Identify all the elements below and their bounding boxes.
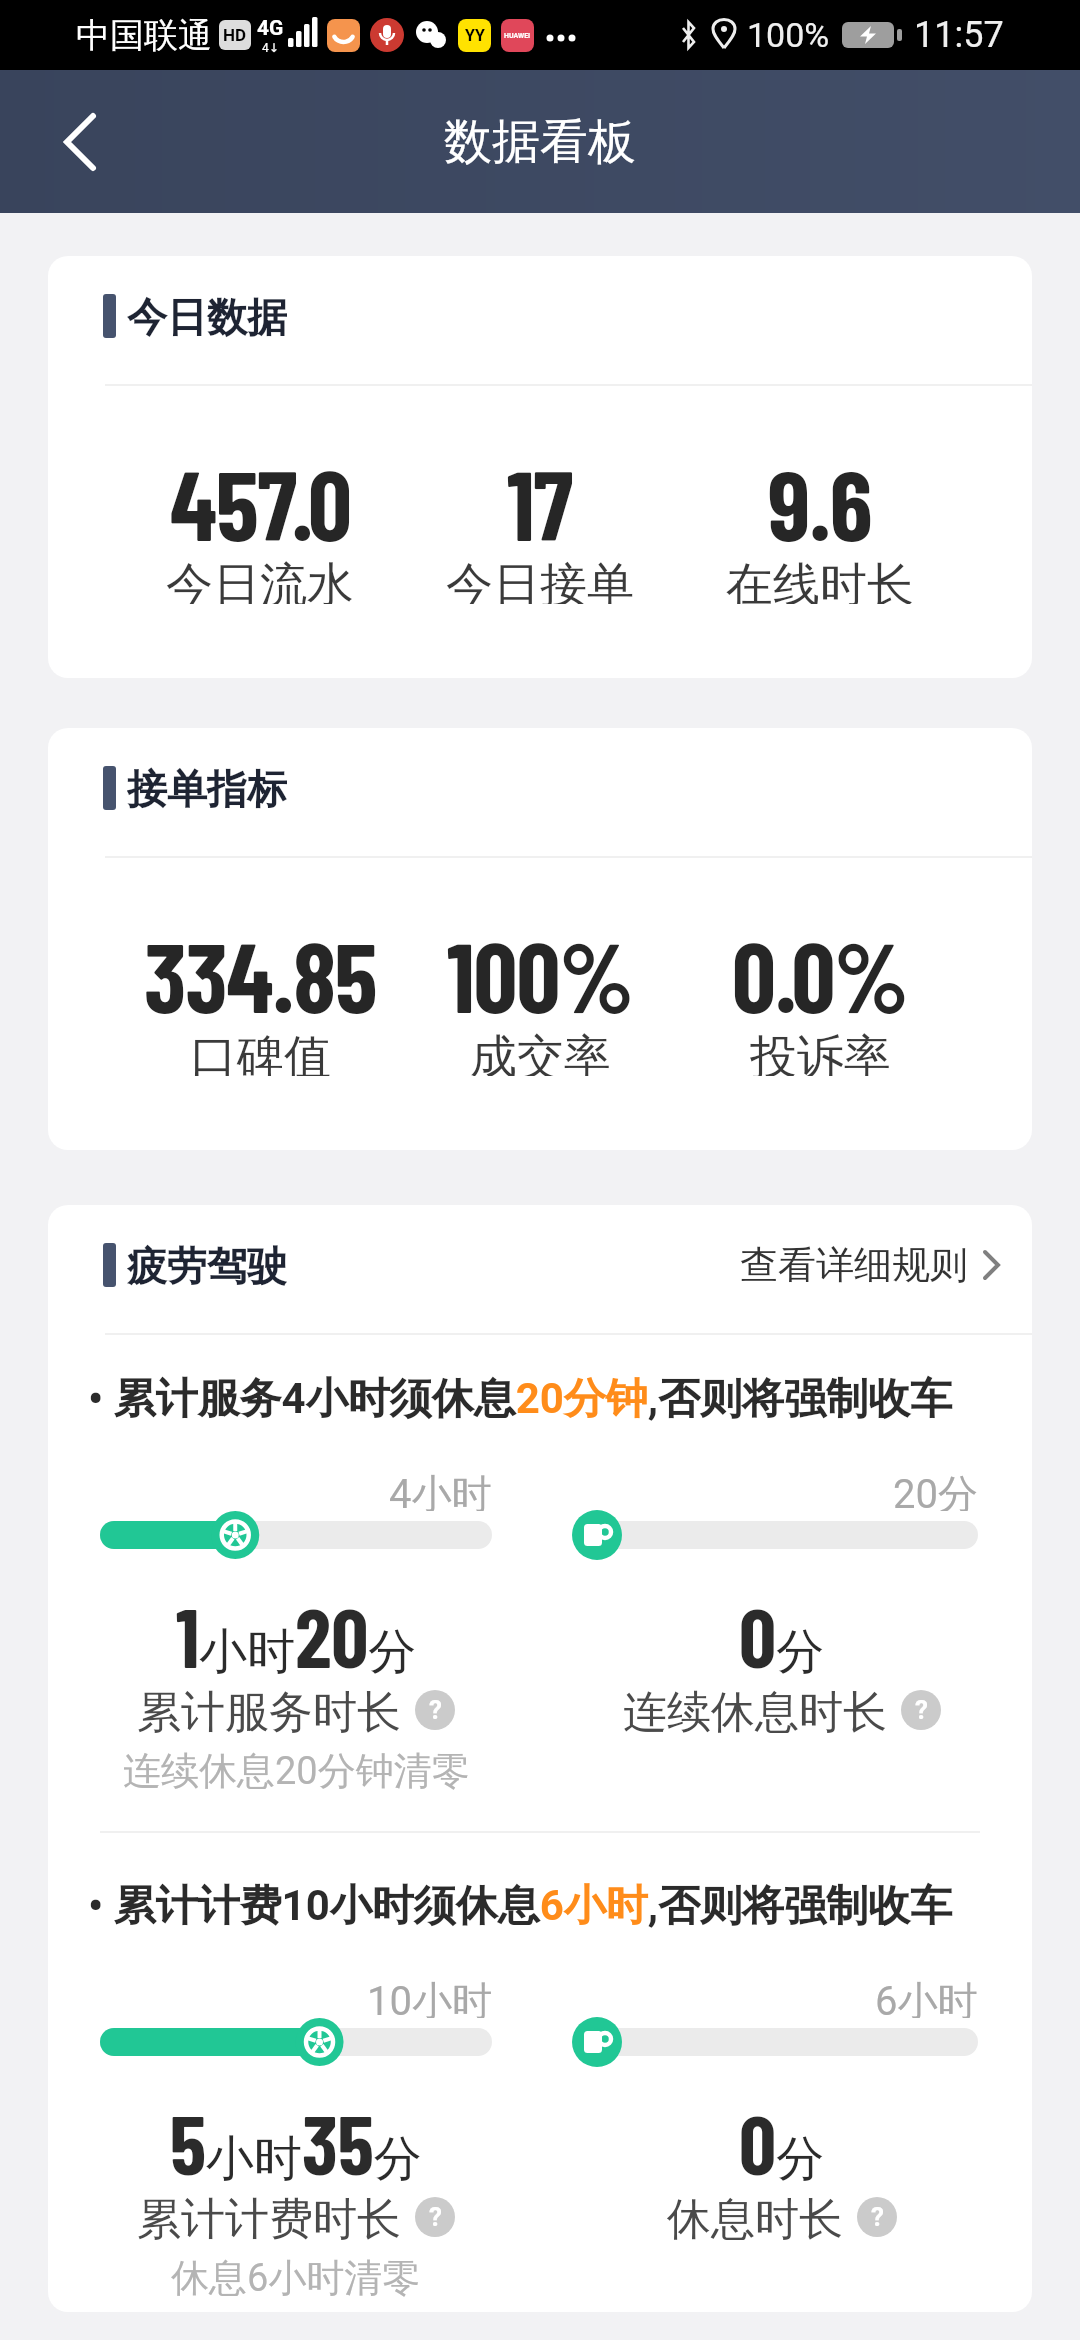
staticText: 中国联通	[76, 14, 212, 57]
staticText: 334.85	[144, 916, 377, 1032]
staticText: 数据看板	[444, 112, 636, 172]
staticText: 100%	[747, 15, 830, 55]
button[interactable]: 查看详细规则	[740, 1241, 1002, 1289]
staticText: 接单指标	[127, 764, 287, 812]
staticText: 4↓	[262, 41, 279, 55]
staticText: 今日流水	[166, 556, 354, 604]
staticText: 投诉率	[750, 1028, 891, 1076]
staticText: 口碑值	[190, 1028, 331, 1076]
staticText: 今日数据	[127, 292, 287, 340]
staticText: 5小时35分	[170, 2093, 422, 2191]
staticText: 100%	[447, 916, 633, 1032]
staticText: 在线时长	[726, 556, 914, 604]
button[interactable]	[48, 110, 112, 174]
staticText: 20分	[893, 1469, 978, 1511]
staticText: 累计计费时长	[137, 2192, 401, 2242]
staticText: 9.6	[768, 444, 872, 560]
staticText: 0分	[739, 1586, 825, 1684]
staticText: ?	[871, 2202, 884, 2232]
staticText: 6小时	[875, 1976, 978, 2018]
staticText: 11:57	[914, 14, 1004, 56]
staticText: 今日接单	[446, 556, 634, 604]
staticText: 连续休息20分钟清零	[123, 1747, 470, 1791]
staticText: ?	[915, 1695, 928, 1725]
staticText: • 累计计费10小时须休息6小时,否则将强制收车	[88, 1880, 953, 1930]
staticText: 休息6小时清零	[171, 2254, 421, 2298]
staticText: 疲劳驾驶	[127, 1241, 287, 1289]
staticText: HUAWEI	[504, 32, 531, 40]
staticText: 累计服务时长	[137, 1685, 401, 1735]
staticText: 4G	[257, 16, 284, 41]
staticText: 成交率	[470, 1028, 611, 1076]
staticText: 1小时20分	[176, 1586, 417, 1684]
staticText: YY	[465, 26, 485, 45]
staticText: 0.0%	[732, 916, 908, 1032]
staticText: 休息时长	[667, 2192, 843, 2242]
staticText: ?	[429, 1695, 442, 1725]
staticText: ?	[429, 2202, 442, 2232]
staticText: 17	[507, 444, 573, 560]
staticText: 10小时	[367, 1976, 492, 2018]
staticText: 4小时	[389, 1469, 492, 1511]
staticText: 0分	[739, 2093, 825, 2191]
staticText: 457.0	[170, 444, 351, 560]
staticText: HD	[223, 25, 247, 45]
staticText: • 累计服务4小时须休息20分钟,否则将强制收车	[88, 1373, 953, 1423]
staticText: 查看详细规则	[740, 1241, 968, 1289]
staticText: 连续休息时长	[623, 1685, 887, 1735]
